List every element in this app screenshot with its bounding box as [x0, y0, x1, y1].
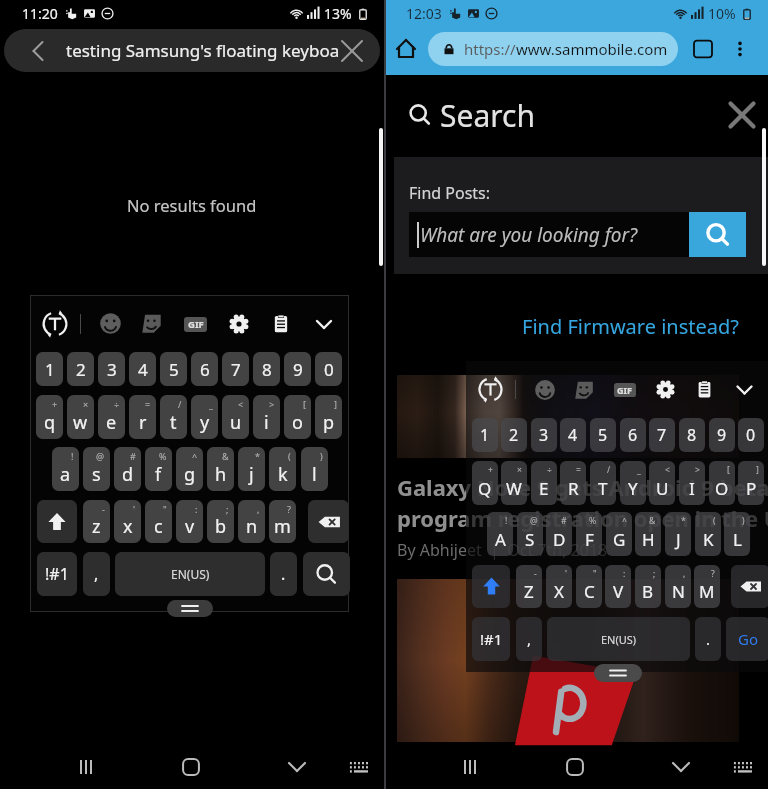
button[interactable]: GIF — [182, 311, 208, 337]
button[interactable]: Hide keyboard — [726, 749, 762, 785]
button[interactable]: Go — [726, 617, 768, 661]
button[interactable]: " — [576, 565, 602, 608]
button[interactable]: ] — [738, 461, 764, 505]
button[interactable]: 5 — [590, 418, 616, 452]
button[interactable]: ( — [269, 447, 296, 491]
button[interactable]: , — [83, 552, 110, 596]
button[interactable]: ; — [207, 500, 234, 543]
button[interactable]: < — [222, 395, 249, 439]
button[interactable]: _ — [620, 461, 646, 505]
button[interactable]: 7 — [649, 418, 675, 452]
button[interactable]: : — [176, 500, 203, 543]
button[interactable]: Emoji — [99, 312, 122, 335]
button[interactable]: ÷ — [98, 395, 125, 439]
button[interactable]: . — [270, 552, 297, 596]
button[interactable]: = — [560, 461, 586, 505]
button[interactable]: Recents — [68, 749, 104, 785]
button[interactable]: 7 — [222, 352, 249, 386]
button[interactable]: * — [238, 447, 265, 491]
button[interactable]: @ — [517, 512, 543, 556]
button[interactable]: 1 — [472, 418, 498, 452]
button[interactable]: , — [238, 500, 265, 543]
button[interactable]: ) — [724, 512, 750, 556]
button[interactable]: Back — [279, 749, 315, 785]
button[interactable]: Search — [689, 212, 746, 257]
button[interactable]: 4 — [129, 352, 156, 386]
button[interactable]: ( — [695, 512, 721, 556]
button[interactable]: + — [472, 461, 498, 505]
button[interactable]: ^ — [606, 512, 632, 556]
button[interactable]: 9 — [284, 352, 311, 386]
button[interactable]: ' — [114, 500, 141, 543]
button[interactable]: 3 — [531, 418, 557, 452]
button[interactable]: % — [145, 447, 172, 491]
button[interactable]: 2 — [67, 352, 94, 386]
button[interactable]: ÷ — [531, 461, 557, 505]
button[interactable]: Home — [557, 749, 593, 785]
button[interactable]: @ — [83, 447, 110, 491]
button[interactable]: ! — [487, 512, 513, 556]
button[interactable]: 6 — [191, 352, 218, 386]
button[interactable]: Hide keyboard — [342, 749, 378, 785]
button[interactable]: % — [576, 512, 602, 556]
button[interactable]: What are you looking for? — [409, 212, 689, 257]
button[interactable]: GIF — [612, 377, 637, 402]
button[interactable]: More options — [726, 35, 754, 63]
button[interactable]: Move keyboard — [594, 664, 642, 682]
button[interactable]: 2 — [501, 418, 527, 452]
button[interactable]: Translate — [476, 375, 505, 404]
button[interactable]: # — [546, 512, 572, 556]
button[interactable]: [ — [709, 461, 735, 505]
button[interactable]: * — [665, 512, 691, 556]
button[interactable]: Emoji — [534, 379, 556, 401]
button[interactable]: × — [67, 395, 94, 439]
button[interactable]: 3 — [98, 352, 125, 386]
button[interactable] — [308, 500, 349, 543]
button[interactable] — [303, 552, 350, 596]
button[interactable]: Move keyboard — [167, 600, 213, 617]
button[interactable]: Stickers — [573, 379, 595, 401]
button[interactable]: Collapse — [311, 311, 337, 337]
button[interactable]: 5 — [160, 352, 187, 386]
button[interactable]: Tabs — [688, 34, 718, 64]
button[interactable]: Home — [384, 26, 428, 72]
button[interactable]: ? — [694, 565, 720, 608]
button[interactable]: = — [129, 395, 156, 439]
button[interactable]: Back — [18, 31, 58, 71]
button[interactable]: : — [605, 565, 631, 608]
button[interactable]: > — [253, 395, 280, 439]
button[interactable]: !#1 — [37, 552, 77, 596]
button[interactable]: & — [207, 447, 234, 491]
button[interactable]: https:// — [428, 32, 678, 66]
button[interactable]: Translate — [40, 309, 70, 339]
button[interactable]: Clipboard — [270, 313, 292, 335]
button[interactable]: , — [516, 617, 542, 661]
button[interactable]: / — [590, 461, 616, 505]
button[interactable]: Recents — [452, 749, 488, 785]
button[interactable]: Find Firmware instead? — [522, 313, 739, 340]
button[interactable]: & — [635, 512, 661, 556]
button[interactable]: 1 — [36, 352, 63, 386]
button[interactable]: 8 — [253, 352, 280, 386]
button[interactable]: 9 — [709, 418, 735, 452]
button[interactable]: × — [501, 461, 527, 505]
button[interactable]: ' — [546, 565, 572, 608]
button[interactable]: ^ — [176, 447, 203, 491]
button[interactable]: EN(US) — [547, 617, 690, 661]
button[interactable]: < — [649, 461, 675, 505]
button[interactable]: !#1 — [472, 617, 510, 661]
button[interactable]: Home — [173, 749, 209, 785]
button[interactable] — [731, 565, 768, 608]
button[interactable]: . — [695, 617, 721, 661]
button[interactable]: 0 — [738, 418, 764, 452]
button[interactable]: ! — [52, 447, 79, 491]
button[interactable]: Clipboard — [694, 379, 715, 400]
button[interactable]: 8 — [679, 418, 705, 452]
button[interactable]: " — [145, 500, 172, 543]
button[interactable]: Collapse — [732, 377, 757, 402]
button[interactable] — [37, 500, 77, 543]
button[interactable]: + — [36, 395, 63, 439]
button[interactable]: ] — [315, 395, 342, 439]
button[interactable]: [ — [284, 395, 311, 439]
button[interactable]: - — [83, 500, 110, 543]
